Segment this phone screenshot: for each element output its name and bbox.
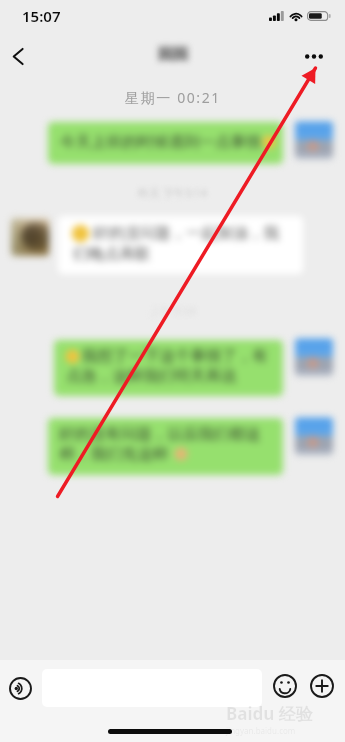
button[interactable]: More functions bbox=[305, 669, 339, 703]
button[interactable]: 好的没问题，一起加油，我 bbox=[58, 216, 303, 274]
button[interactable]: Voice message bbox=[3, 671, 37, 705]
staticText: 好的没问题，一起加油，我 bbox=[93, 223, 279, 243]
staticText: 圌圌 bbox=[158, 45, 188, 64]
staticText: 样，我们先这样 bbox=[60, 444, 169, 464]
button[interactable]: Profile picture bbox=[11, 218, 49, 256]
button[interactable]: More options bbox=[301, 34, 345, 78]
button[interactable]: 今天上班的时候遇到一点事情 bbox=[48, 122, 283, 164]
button[interactable]: Emoji bbox=[268, 669, 302, 703]
staticText: 我想了一下这个事情了，有 bbox=[82, 346, 268, 366]
button[interactable]: Profile picture bbox=[295, 338, 333, 376]
staticText: 今天上班的时候遇到一点事情 bbox=[60, 132, 262, 152]
staticText: Baidu 经验 bbox=[226, 702, 313, 725]
button[interactable]: Profile picture bbox=[295, 121, 333, 159]
button[interactable]: 好的没有问题，以后我们都这 bbox=[48, 418, 283, 475]
button[interactable]: 我想了一下这个事情了，有 bbox=[54, 340, 283, 396]
staticText: 15:07 bbox=[22, 6, 61, 26]
button[interactable]: Back bbox=[0, 34, 40, 78]
button[interactable]: Profile picture bbox=[295, 417, 333, 455]
staticText: 点急，这样我们明天再说 bbox=[66, 366, 237, 386]
staticText: jingyan.baidu.com bbox=[226, 725, 296, 736]
staticText: 们晚点再联 bbox=[73, 244, 151, 264]
staticText: 上午 9:58 bbox=[149, 303, 196, 318]
staticText: 星期一 00:21 bbox=[125, 88, 221, 107]
staticText: 好的没有问题，以后我们都这 bbox=[59, 424, 261, 444]
